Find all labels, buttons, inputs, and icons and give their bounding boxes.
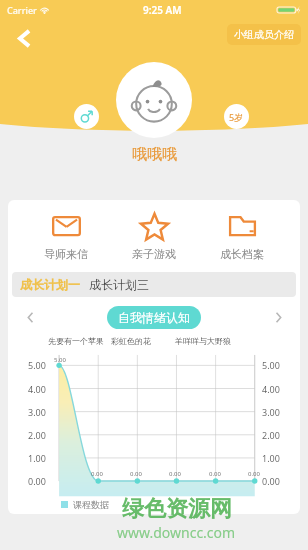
button[interactable]: Previous course xyxy=(17,304,43,330)
staticText: 自我情绪认知 xyxy=(118,310,190,325)
staticText: 5.00 xyxy=(28,359,46,371)
staticText: 5岁 xyxy=(229,111,244,123)
staticText: 3.00 xyxy=(28,406,46,418)
staticText: 0.00 xyxy=(28,475,46,487)
button[interactable]: Child avatar xyxy=(116,62,192,138)
staticText: 1.00 xyxy=(262,452,280,464)
staticText: 5.00 xyxy=(54,356,66,364)
staticText: www.downcc.com xyxy=(117,523,236,542)
staticText: 1.00 xyxy=(28,452,46,464)
staticText: 9:25 AM xyxy=(143,3,182,17)
staticText: 羊咩咩与大野狼 xyxy=(175,336,231,346)
button[interactable]: 自我情绪认知 xyxy=(107,306,201,329)
button[interactable]: 亲子游戏 xyxy=(124,209,184,263)
staticText: Carrier xyxy=(7,4,37,16)
button[interactable]: Gender male xyxy=(74,104,99,129)
staticText: 4.00 xyxy=(262,383,280,395)
staticText: 0.00 xyxy=(209,470,221,478)
staticText: 哦哦哦 xyxy=(132,145,177,164)
staticText: 0.00 xyxy=(169,470,181,478)
button[interactable]: Next course xyxy=(265,304,291,330)
staticText: 4.00 xyxy=(28,383,46,395)
staticText: 亲子游戏 xyxy=(132,247,176,261)
staticText: 彩虹色的花 xyxy=(111,336,151,346)
button[interactable]: 小组成员介绍 xyxy=(227,24,301,45)
button[interactable]: 成长计划一 xyxy=(12,277,85,292)
staticText: 成长计划三 xyxy=(89,277,149,292)
staticText: 2.00 xyxy=(28,429,46,441)
staticText: 0.00 xyxy=(248,470,260,478)
staticText: 2.00 xyxy=(262,429,280,441)
staticText: 成长计划一 xyxy=(20,277,80,292)
button[interactable]: 5岁 xyxy=(224,104,249,129)
button[interactable]: 成长计划三 xyxy=(85,277,153,292)
staticText: 成长档案 xyxy=(220,247,264,261)
staticText: 0.00 xyxy=(91,470,103,478)
button[interactable]: 导师来信 xyxy=(36,209,96,263)
button[interactable]: 成长档案 xyxy=(212,209,272,263)
staticText: 先要有一个苹果 xyxy=(48,336,104,346)
staticText: 0.00 xyxy=(130,470,142,478)
staticText: 5.00 xyxy=(262,359,280,371)
staticText: 3.00 xyxy=(262,406,280,418)
staticText: 小组成员介绍 xyxy=(234,28,294,41)
staticText: 导师来信 xyxy=(44,247,88,261)
staticText: 绿色资源网 xyxy=(122,495,232,523)
staticText: 课程数据 xyxy=(73,499,109,510)
staticText: 0.00 xyxy=(262,475,280,487)
button[interactable]: Back xyxy=(4,18,44,58)
